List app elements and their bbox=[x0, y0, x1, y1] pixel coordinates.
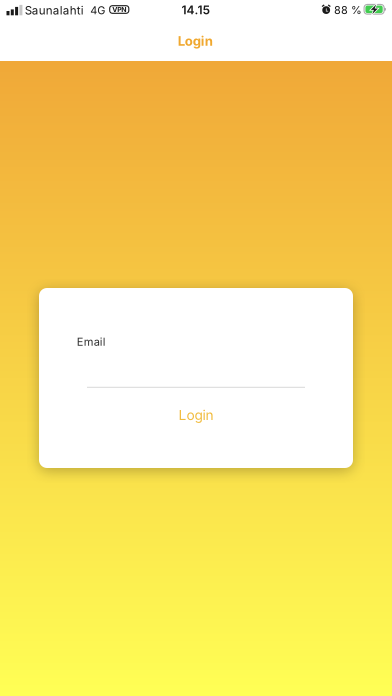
button[interactable]: Login bbox=[87, 397, 305, 433]
staticText: 4G bbox=[90, 4, 105, 17]
staticText: Saunalahti bbox=[25, 3, 84, 17]
staticText: Email bbox=[77, 335, 106, 348]
staticText: 88 % bbox=[334, 3, 362, 17]
button[interactable]: Login bbox=[135, 24, 255, 58]
staticText: 14.15 bbox=[181, 2, 210, 17]
button[interactable]: Email bbox=[87, 322, 305, 386]
staticText: Login bbox=[178, 407, 213, 423]
staticText: Login bbox=[178, 33, 213, 49]
staticText: VPN bbox=[112, 5, 126, 14]
